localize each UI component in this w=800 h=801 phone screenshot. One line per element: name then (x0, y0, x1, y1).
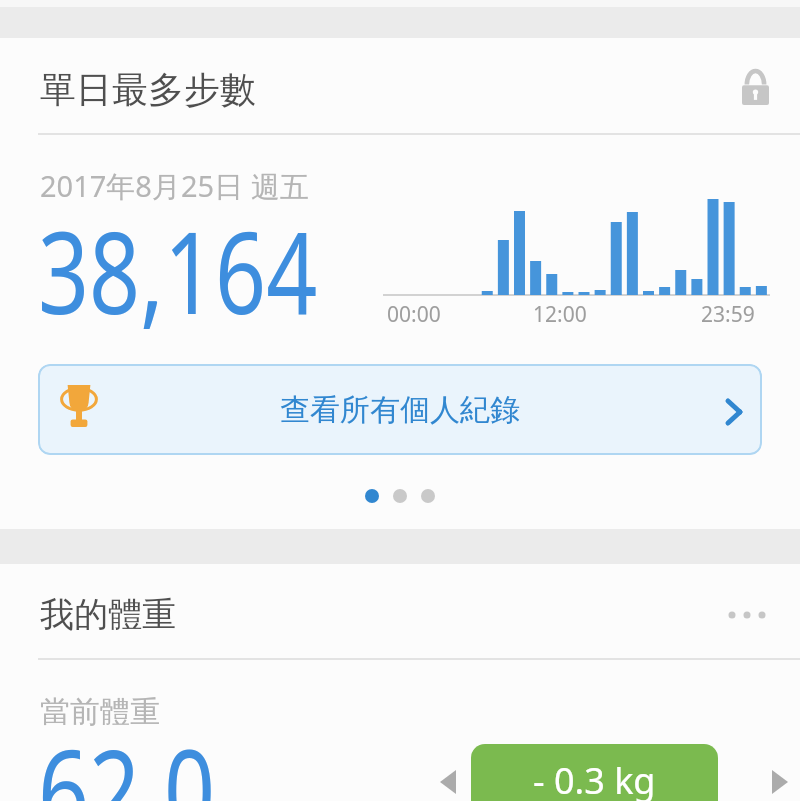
staticText: 12:00 (533, 300, 587, 329)
staticText: 2017年8月25日 週五 (40, 166, 309, 206)
button[interactable] (728, 611, 768, 619)
button[interactable] (440, 770, 456, 794)
staticText: 38,164 (38, 193, 318, 347)
staticText: 查看所有個人紀錄 (280, 391, 520, 429)
staticText: 00:00 (387, 300, 441, 329)
staticText: 62.0 (38, 711, 216, 801)
staticText: 23:59 (701, 300, 755, 329)
staticText: 我的體重 (40, 593, 176, 636)
staticText: - 0.3 kg (533, 756, 656, 801)
staticText: 當前體重 (40, 693, 160, 731)
button[interactable]: - 0.3 kg (471, 744, 718, 801)
button[interactable]: 查看所有個人紀錄 (38, 364, 762, 455)
button[interactable] (772, 770, 788, 794)
staticText: 單日最多步數 (40, 67, 256, 112)
